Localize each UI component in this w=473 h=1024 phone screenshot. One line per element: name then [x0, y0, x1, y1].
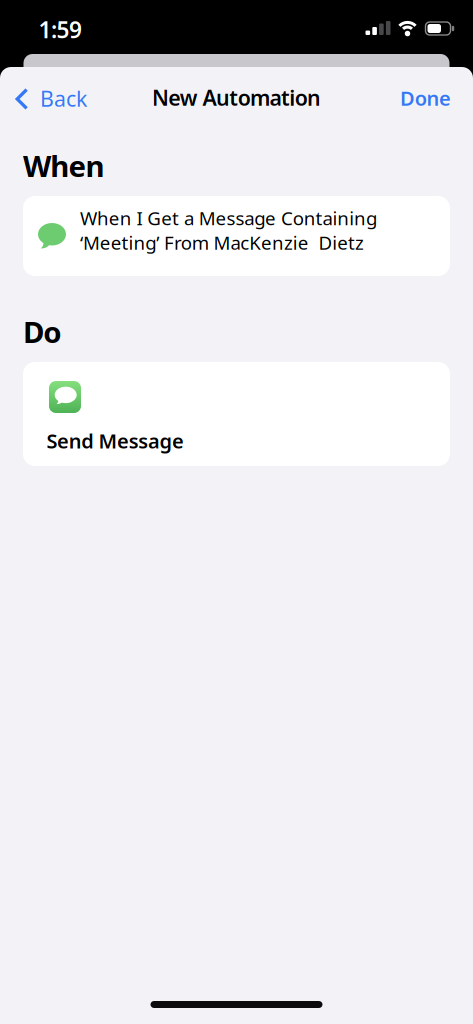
- staticText: Send Message: [46, 427, 184, 454]
- staticText: When: [23, 146, 105, 185]
- staticText: Done: [400, 85, 451, 111]
- staticText: New Automation: [152, 83, 321, 112]
- button[interactable]: Done: [400, 85, 451, 111]
- button[interactable]: Back: [15, 84, 85, 110]
- button[interactable]: Send Message: [23, 362, 450, 466]
- staticText: Back: [40, 84, 87, 112]
- staticText: Do: [23, 312, 61, 351]
- staticText: When I Get a Message Containing: [80, 206, 377, 230]
- button[interactable]: When I Get a Message Containing: [23, 196, 450, 276]
- staticText: 1:59: [38, 14, 82, 44]
- staticText: ‘Meeting’ From MacKenzie Dietz: [80, 230, 364, 255]
